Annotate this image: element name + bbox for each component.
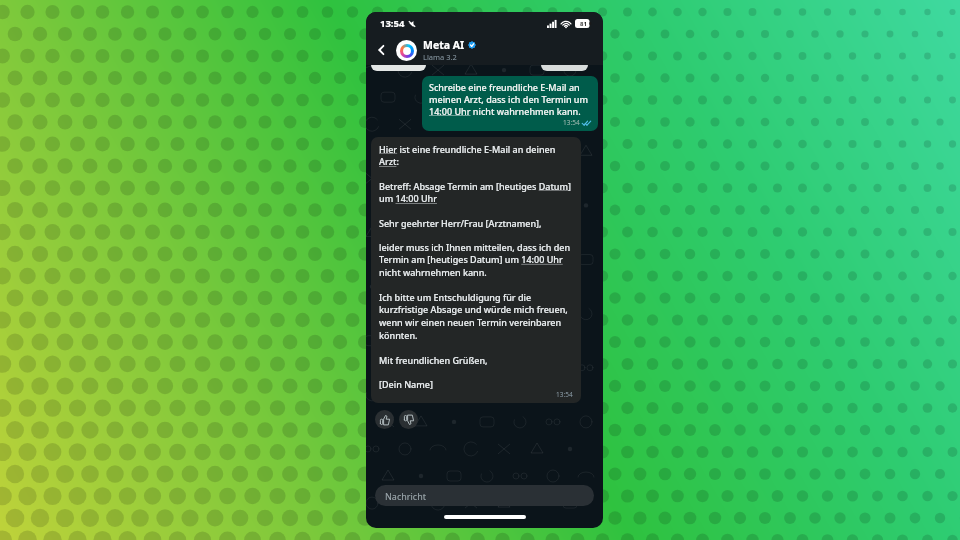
- staticText: 81: [580, 20, 587, 28]
- button[interactable]: [541, 65, 588, 71]
- button[interactable]: Back: [372, 40, 392, 60]
- staticText: leider muss ich Ihnen mitteilen, dass ic…: [379, 241, 573, 279]
- staticText: Sehr geehrter Herr/Frau [Arztnamen],: [379, 217, 542, 229]
- button[interactable]: [371, 65, 426, 71]
- staticText: 13:54: [556, 390, 573, 399]
- staticText: Llama 3.2: [423, 52, 457, 62]
- staticText: 13:54: [563, 118, 580, 127]
- staticText: [Dein Name]: [379, 378, 433, 390]
- button[interactable]: Schreibe eine freundliche E-Mail an mein…: [422, 76, 598, 131]
- staticText: Ich bitte um Entschuldigung für die kurz…: [379, 291, 573, 342]
- staticText: Schreibe eine freundliche E-Mail an mein…: [429, 81, 591, 117]
- button[interactable]: Hier ist eine freundliche E-Mail an dein…: [371, 137, 581, 403]
- staticText: Meta AI: [423, 38, 465, 52]
- button[interactable]: Meta AI: [396, 38, 595, 62]
- staticText: 13:54: [380, 17, 405, 30]
- staticText: Betreff: Absage Termin am [heutiges Datu…: [379, 180, 573, 205]
- staticText: Nachricht: [385, 490, 426, 502]
- button[interactable]: Like: [375, 410, 394, 429]
- staticText: Hier ist eine freundliche E-Mail an dein…: [379, 143, 573, 168]
- staticText: Mit freundlichen Grüßen,: [379, 354, 488, 366]
- button[interactable]: Dislike: [399, 410, 418, 429]
- button[interactable]: Nachricht: [375, 485, 594, 506]
